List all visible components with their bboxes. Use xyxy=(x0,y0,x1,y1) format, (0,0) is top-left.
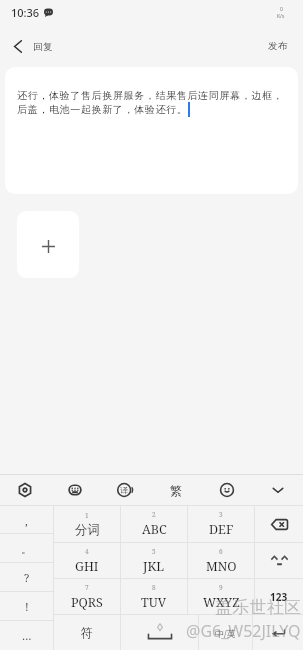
staticText: TUV xyxy=(141,594,167,611)
button[interactable]: ! xyxy=(0,592,53,621)
button[interactable]: 4 xyxy=(54,543,120,578)
button[interactable]: 还行，体验了售后换屏服务，结果售后连同屏幕，边框， xyxy=(5,67,298,194)
staticText: ! xyxy=(25,599,29,614)
staticText: 8 xyxy=(152,583,156,592)
staticText: 1 xyxy=(85,511,89,520)
button[interactable]: Space xyxy=(121,615,198,650)
button[interactable]: … xyxy=(0,621,53,650)
button[interactable]: Keyboard layout xyxy=(50,475,100,505)
button[interactable]: Hide keyboard xyxy=(252,475,303,505)
staticText: 4 xyxy=(85,547,89,556)
staticText: 123 xyxy=(270,590,288,604)
button[interactable]: 1 xyxy=(54,506,120,542)
button[interactable]: Settings xyxy=(0,475,50,505)
staticText: PQRS xyxy=(71,594,103,611)
staticText: 回复 xyxy=(33,41,54,53)
staticText: 5 xyxy=(152,547,156,556)
staticText: 还行，体验了售后换屏服务，结果售后连同屏幕，边框， xyxy=(17,89,284,102)
button[interactable]: 3 xyxy=(188,506,254,542)
staticText: 9 xyxy=(219,583,223,592)
staticText: 中/英 xyxy=(215,627,236,639)
button[interactable]: ? xyxy=(0,563,53,592)
button[interactable]: 123 xyxy=(255,579,303,614)
staticText: … xyxy=(22,628,32,643)
button[interactable]: 9 xyxy=(188,579,254,614)
button[interactable]: 5 xyxy=(121,543,187,578)
staticText: 3 xyxy=(219,510,223,519)
staticText: 10:36 xyxy=(11,5,40,20)
staticText: 分词 xyxy=(75,522,100,538)
button[interactable]: 符 xyxy=(54,615,120,650)
button[interactable]: Enter xyxy=(253,615,303,650)
staticText: , xyxy=(25,513,28,528)
button[interactable]: 发布 xyxy=(254,31,303,61)
staticText: 盖乐世社区 xyxy=(215,597,301,618)
button[interactable]: 中/英 xyxy=(199,615,252,650)
button[interactable]: Voice translate xyxy=(100,475,150,505)
staticText: 符 xyxy=(81,625,93,640)
staticText: 译 xyxy=(120,485,128,495)
button[interactable]: 。 xyxy=(0,534,53,563)
staticText: ABC xyxy=(142,521,167,538)
button[interactable]: Back xyxy=(0,40,64,53)
staticText: GHI xyxy=(75,558,99,575)
staticText: MNO xyxy=(206,558,237,575)
staticText: 6 xyxy=(219,547,223,556)
button[interactable]: Backspace xyxy=(255,506,303,542)
staticText: 2 xyxy=(152,510,156,519)
button[interactable]: Add image xyxy=(17,211,79,278)
button[interactable]: 6 xyxy=(188,543,254,578)
staticText: DEF xyxy=(209,521,234,538)
staticText: K/s xyxy=(277,13,285,20)
staticText: 后盖，电池一起换新了，体验还行。 xyxy=(17,103,188,116)
staticText: ? xyxy=(24,570,30,585)
staticText: 0 xyxy=(280,6,283,13)
button[interactable]: Emoji xyxy=(201,475,252,505)
staticText: JKL xyxy=(143,558,165,575)
button[interactable]: Kaomoji xyxy=(255,543,303,578)
button[interactable]: 2 xyxy=(121,506,187,542)
staticText: WXYZ xyxy=(203,594,240,611)
staticText: 。 xyxy=(21,542,32,556)
other: Back xyxy=(14,40,22,53)
button[interactable]: , xyxy=(0,506,53,534)
staticText: 发布 xyxy=(268,40,289,52)
button[interactable]: 8 xyxy=(121,579,187,614)
staticText: 7 xyxy=(85,583,89,592)
button[interactable]: 7 xyxy=(54,579,120,614)
staticText: 繁 xyxy=(170,483,182,498)
button[interactable]: 繁 xyxy=(150,475,201,505)
staticText: @G6_W52JILYQ xyxy=(186,620,301,642)
